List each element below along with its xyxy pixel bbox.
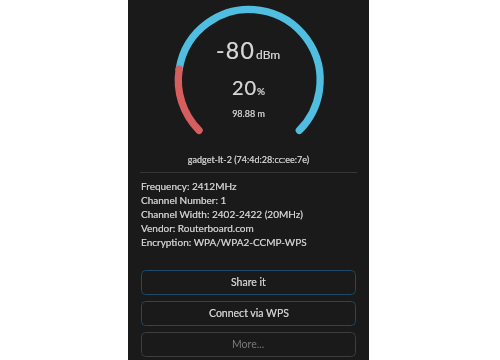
staticText: 20	[232, 75, 257, 99]
button[interactable]: Share it	[141, 270, 356, 295]
staticText: Connect via WPS	[209, 307, 289, 320]
staticText: Encryption: WPA/WPA2-CCMP-WPS	[141, 236, 307, 248]
staticText: Channel Number: 1	[141, 194, 227, 206]
staticText: %	[257, 85, 266, 97]
button[interactable]: Connect via WPS	[141, 301, 356, 326]
staticText: -80	[216, 36, 256, 64]
staticText: Share it	[231, 276, 266, 289]
staticText: gadget-lt-2 (74:4d:28:cc:ee:7e)	[128, 154, 369, 165]
staticText: Channel Width: 2402-2422 (20MHz)	[141, 208, 303, 220]
staticText: 98.88 m	[128, 108, 369, 119]
button[interactable]: More...	[141, 332, 356, 357]
staticText: dBm	[256, 47, 281, 61]
staticText: Vendor: Routerboard.com	[141, 222, 254, 234]
staticText: More...	[232, 338, 265, 351]
staticText: Frequency: 2412MHz	[141, 180, 237, 192]
